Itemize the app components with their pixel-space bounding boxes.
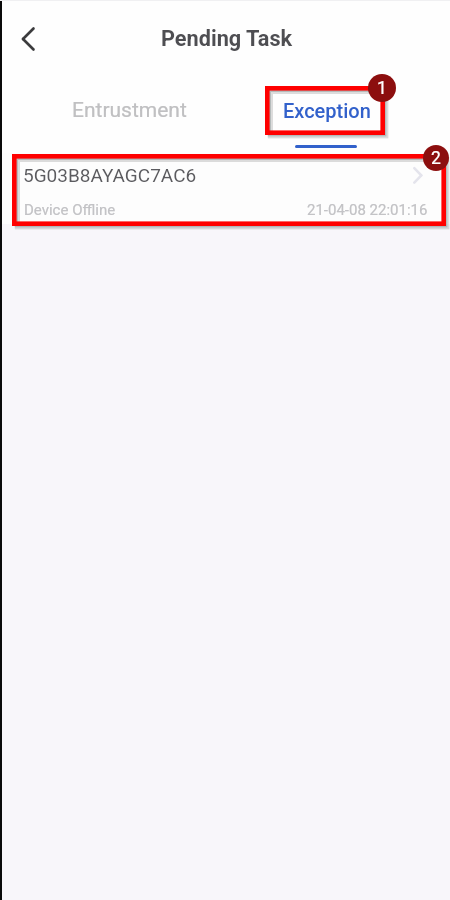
button[interactable]: Entrustment [30,88,228,144]
staticText: 21-04-08 22:01:16 [307,201,428,219]
staticText: 5G03B8AYAGC7AC6 [23,164,197,186]
button[interactable]: 5G03B8AYAGC7AC6 [0,153,450,224]
button[interactable]: Back [9,16,54,61]
staticText: Entrustment [72,98,187,123]
button[interactable]: Exception [228,88,426,144]
staticText: 1 [377,78,387,99]
staticText: 2 [431,148,441,169]
staticText: Exception [283,99,371,122]
staticText: Pending Task [161,26,293,51]
staticText: Device Offline [24,201,116,219]
